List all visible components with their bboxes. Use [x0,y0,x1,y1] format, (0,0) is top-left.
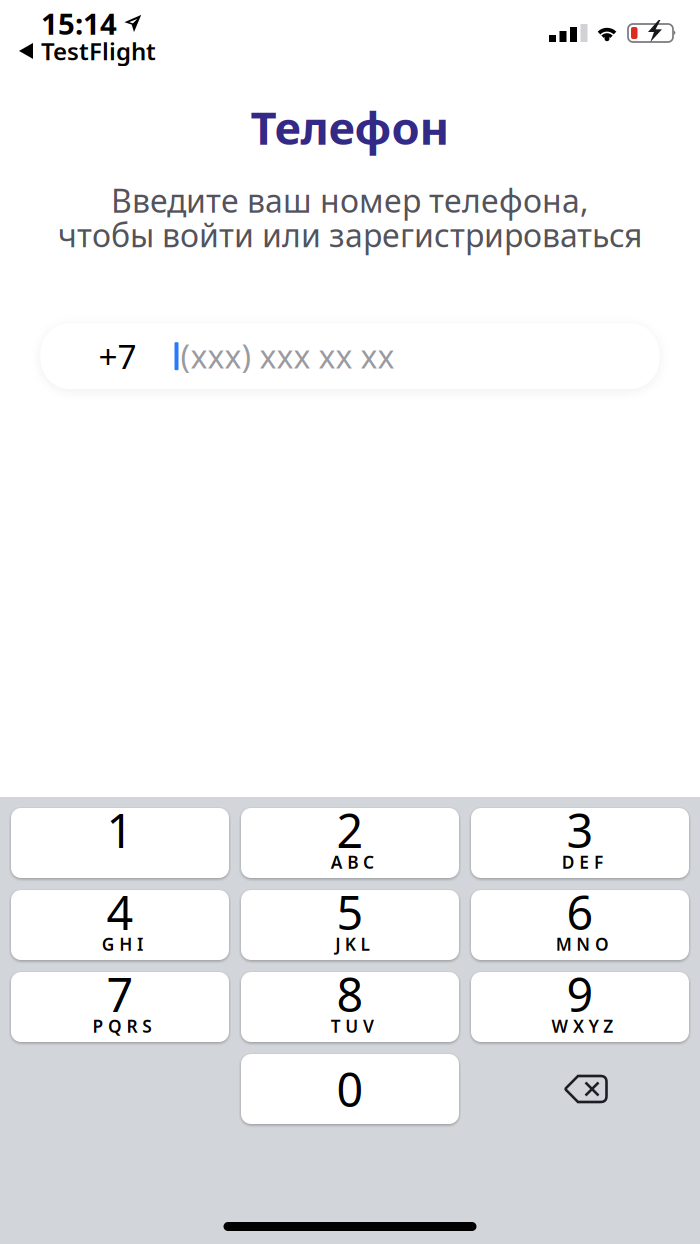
staticText: DEF [562,850,603,873]
staticText: 1 [106,799,133,861]
staticText: 3 [566,799,593,861]
staticText: 5 [336,881,363,943]
staticText: MNO [556,932,609,955]
button[interactable]: TestFlight [19,35,156,67]
staticText: Телефон [250,97,449,157]
staticText: (xxx) xxx xx xx [180,335,394,377]
staticText: ABC [331,850,374,873]
staticText: +7 [98,334,136,378]
button[interactable]: 7 [11,972,229,1042]
button[interactable]: +7 [40,323,659,389]
staticText: PQRS [92,1014,152,1037]
staticText: Введите ваш номер телефона, [111,179,589,222]
button[interactable]: 9 [471,972,689,1042]
staticText: 2 [336,799,363,861]
staticText: 6 [566,881,593,943]
staticText: 8 [336,963,363,1025]
button[interactable]: Delete [471,1054,689,1124]
staticText: 7 [106,963,133,1025]
staticText: 9 [566,963,593,1025]
staticText: WXYZ [551,1014,613,1037]
staticText: JKL [335,932,369,955]
button[interactable]: 1 [11,808,229,878]
staticText: GHI [102,932,143,955]
staticText: 15:14 [41,4,117,43]
button[interactable]: 3 [471,808,689,878]
button[interactable]: 2 [241,808,459,878]
staticText: TestFlight [41,35,156,67]
button[interactable]: 8 [241,972,459,1042]
staticText: чтобы войти или зарегистрироваться [58,214,642,256]
staticText: 0 [336,1058,363,1120]
button[interactable]: 6 [471,890,689,960]
button[interactable]: 5 [241,890,459,960]
staticText: TUV [331,1014,374,1037]
button[interactable]: 4 [11,890,229,960]
button[interactable]: 0 [241,1054,459,1124]
staticText: 4 [106,881,133,943]
